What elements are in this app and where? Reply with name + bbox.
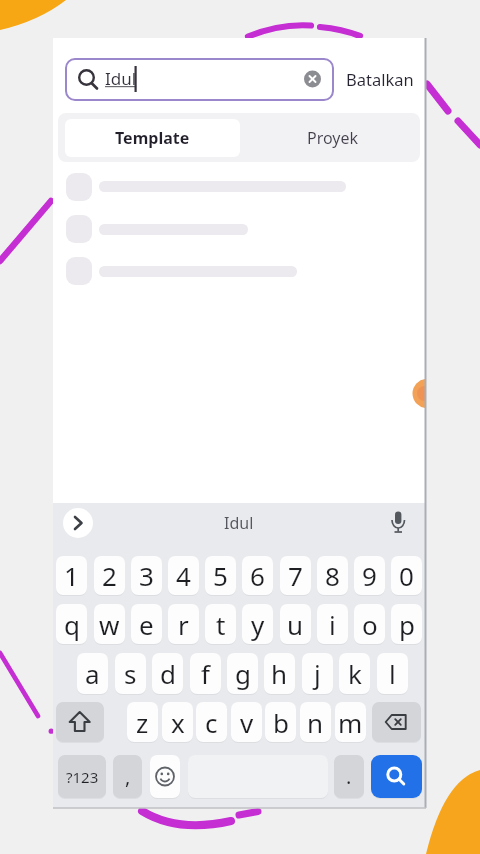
- button[interactable]: [150, 755, 180, 798]
- staticText: q: [64, 607, 80, 642]
- staticText: k: [348, 656, 362, 691]
- button[interactable]: s: [115, 653, 146, 694]
- button[interactable]: f: [190, 653, 221, 694]
- staticText: a: [85, 656, 100, 691]
- staticText: w: [99, 607, 120, 642]
- staticText: c: [205, 705, 218, 740]
- button[interactable]: 8: [317, 556, 348, 595]
- button[interactable]: a: [77, 653, 108, 694]
- staticText: 2: [102, 558, 117, 593]
- staticText: y: [251, 607, 265, 642]
- staticText: Batalkan: [346, 68, 414, 90]
- button[interactable]: [63, 508, 93, 538]
- button[interactable]: n: [300, 702, 331, 742]
- staticText: l: [389, 656, 396, 691]
- staticText: x: [171, 705, 185, 740]
- staticText: s: [124, 656, 137, 691]
- staticText: f: [201, 656, 210, 691]
- button[interactable]: [372, 702, 421, 742]
- button[interactable]: 3: [131, 556, 162, 595]
- button[interactable]: 9: [354, 556, 385, 595]
- staticText: 9: [362, 558, 377, 593]
- button[interactable]: [371, 755, 422, 798]
- button[interactable]: q: [56, 604, 87, 644]
- button[interactable]: 0: [391, 556, 422, 595]
- staticText: 3: [139, 558, 154, 593]
- button[interactable]: p: [391, 604, 422, 644]
- staticText: ,: [125, 763, 131, 790]
- button[interactable]: l: [377, 653, 408, 694]
- staticText: 7: [288, 558, 303, 593]
- staticText: b: [273, 705, 289, 740]
- staticText: u: [287, 607, 304, 642]
- button[interactable]: i: [317, 604, 348, 644]
- staticText: r: [178, 607, 189, 642]
- staticText: d: [160, 656, 176, 691]
- staticText: n: [307, 705, 324, 740]
- staticText: ?123: [66, 767, 99, 787]
- button[interactable]: e: [131, 604, 162, 644]
- button[interactable]: w: [94, 604, 125, 644]
- staticText: m: [338, 705, 363, 740]
- button[interactable]: 7: [280, 556, 311, 595]
- button[interactable]: c: [196, 702, 227, 742]
- button[interactable]: Idul: [189, 508, 289, 538]
- staticText: Proyek: [307, 127, 359, 149]
- staticText: 8: [325, 558, 340, 593]
- staticText: Template: [115, 127, 190, 149]
- staticText: o: [362, 607, 378, 642]
- staticText: h: [271, 656, 288, 691]
- button[interactable]: x: [162, 702, 193, 742]
- staticText: v: [240, 705, 254, 740]
- button[interactable]: Template: [65, 119, 240, 157]
- button[interactable]: ?123: [58, 755, 106, 798]
- button[interactable]: [66, 59, 333, 100]
- button[interactable]: 4: [168, 556, 199, 595]
- button[interactable]: [56, 702, 104, 742]
- staticText: 1: [64, 558, 79, 593]
- staticText: p: [399, 607, 415, 642]
- button[interactable]: g: [227, 653, 258, 694]
- button[interactable]: 5: [205, 556, 236, 595]
- staticText: j: [314, 656, 321, 691]
- staticText: Idul: [224, 512, 254, 534]
- button[interactable]: d: [152, 653, 183, 694]
- button[interactable]: 6: [242, 556, 273, 595]
- button[interactable]: ,: [113, 755, 142, 798]
- staticText: 5: [213, 558, 228, 593]
- button[interactable]: r: [168, 604, 199, 644]
- button[interactable]: m: [335, 702, 366, 742]
- button[interactable]: k: [339, 653, 370, 694]
- button[interactable]: o: [354, 604, 385, 644]
- button[interactable]: Batalkan: [345, 62, 415, 96]
- staticText: g: [235, 656, 251, 691]
- button[interactable]: Proyek: [245, 119, 420, 157]
- staticText: Idul: [105, 67, 137, 90]
- staticText: 0: [399, 558, 414, 593]
- button[interactable]: 1: [56, 556, 87, 595]
- staticText: .: [346, 763, 352, 790]
- button[interactable]: z: [127, 702, 158, 742]
- staticText: i: [329, 607, 336, 642]
- button[interactable]: 2: [94, 556, 125, 595]
- staticText: 4: [176, 558, 191, 593]
- button[interactable]: u: [280, 604, 311, 644]
- button[interactable]: v: [231, 702, 262, 742]
- button[interactable]: j: [302, 653, 333, 694]
- button[interactable]: h: [264, 653, 295, 694]
- button[interactable]: b: [265, 702, 296, 742]
- staticText: 6: [250, 558, 265, 593]
- button[interactable]: .: [334, 755, 364, 798]
- button[interactable]: y: [242, 604, 273, 644]
- staticText: z: [136, 705, 149, 740]
- staticText: e: [139, 607, 154, 642]
- staticText: t: [216, 607, 226, 642]
- button[interactable]: t: [205, 604, 236, 644]
